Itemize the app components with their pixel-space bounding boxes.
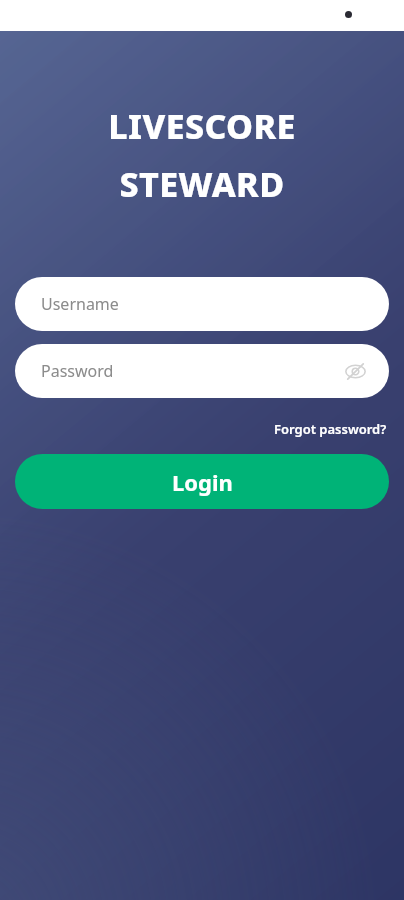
staticText: Forgot password?: [274, 420, 387, 438]
staticText: Login: [172, 467, 233, 497]
button[interactable]: Login: [15, 454, 389, 509]
button[interactable]: Username: [15, 277, 389, 331]
staticText: STEWARD: [0, 161, 404, 207]
button[interactable]: Password: [15, 344, 389, 398]
staticText: LIVESCORE: [0, 103, 404, 149]
button[interactable]: Forgot password?: [272, 418, 389, 440]
staticText: Password: [41, 360, 114, 382]
staticText: Username: [41, 293, 119, 315]
button[interactable]: Show password: [341, 357, 369, 385]
